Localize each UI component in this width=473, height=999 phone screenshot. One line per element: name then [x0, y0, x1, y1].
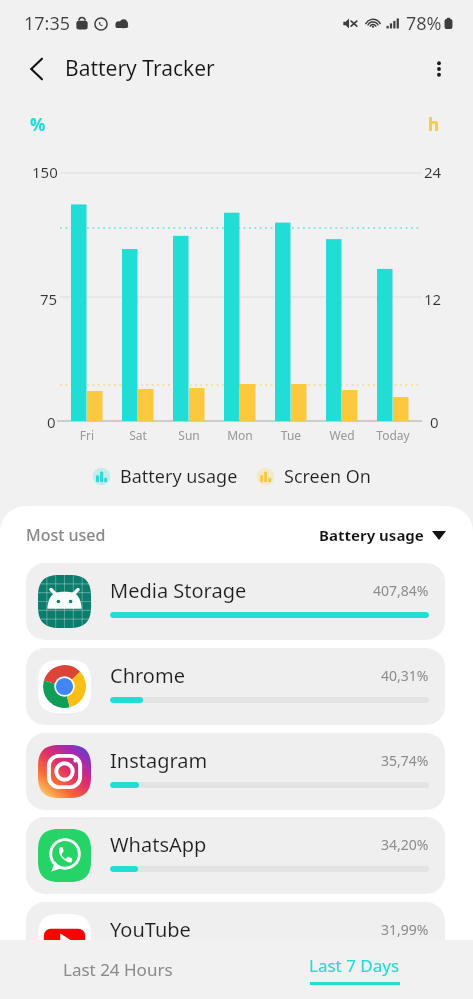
- staticText: 31,99%: [381, 920, 429, 939]
- staticText: YouTube: [110, 916, 191, 940]
- button[interactable]: YouTube: [26, 902, 445, 940]
- staticText: h: [428, 113, 440, 136]
- staticText: WhatsApp: [110, 831, 207, 858]
- staticText: 24: [424, 162, 442, 182]
- staticText: 78%: [406, 11, 442, 36]
- staticText: 407,84%: [373, 581, 429, 600]
- staticText: 150: [32, 162, 58, 182]
- staticText: 75: [40, 289, 58, 309]
- staticText: Chrome: [110, 662, 185, 689]
- button[interactable]: Chrome: [26, 648, 445, 725]
- staticText: 12: [424, 289, 442, 309]
- staticText: %: [30, 113, 46, 136]
- staticText: 0: [47, 412, 56, 432]
- staticText: 40,31%: [381, 666, 429, 685]
- staticText: Tue: [261, 427, 321, 443]
- staticText: Wed: [312, 427, 372, 443]
- staticText: Last 24 Hours: [63, 958, 173, 981]
- button[interactable]: Last 24 Hours: [0, 940, 236, 999]
- staticText: 17:35: [24, 11, 71, 36]
- button[interactable]: Back: [19, 52, 53, 86]
- staticText: Battery usage: [319, 525, 424, 545]
- staticText: Instagram: [110, 747, 208, 774]
- staticText: 34,20%: [381, 835, 429, 854]
- staticText: Sat: [108, 427, 168, 443]
- staticText: Sun: [159, 427, 219, 443]
- button[interactable]: Media Storage: [26, 563, 445, 640]
- button[interactable]: Screen On: [257, 464, 371, 489]
- button[interactable]: Battery usage: [319, 525, 446, 545]
- staticText: Battery usage: [120, 464, 238, 489]
- staticText: Today: [363, 427, 423, 443]
- staticText: Most used: [26, 524, 106, 546]
- staticText: Last 7 Days: [309, 954, 400, 977]
- button[interactable]: Battery usage: [93, 464, 238, 489]
- button[interactable]: Last 7 Days: [236, 940, 473, 999]
- staticText: Media Storage: [110, 577, 247, 604]
- staticText: 35,74%: [381, 751, 429, 770]
- button[interactable]: More options: [422, 52, 456, 86]
- staticText: Screen On: [284, 464, 371, 489]
- staticText: Battery Tracker: [65, 54, 215, 83]
- staticText: Mon: [210, 427, 270, 443]
- button[interactable]: WhatsApp: [26, 817, 445, 894]
- staticText: Fri: [57, 427, 117, 443]
- button[interactable]: Instagram: [26, 733, 445, 810]
- staticText: 0: [430, 412, 439, 432]
